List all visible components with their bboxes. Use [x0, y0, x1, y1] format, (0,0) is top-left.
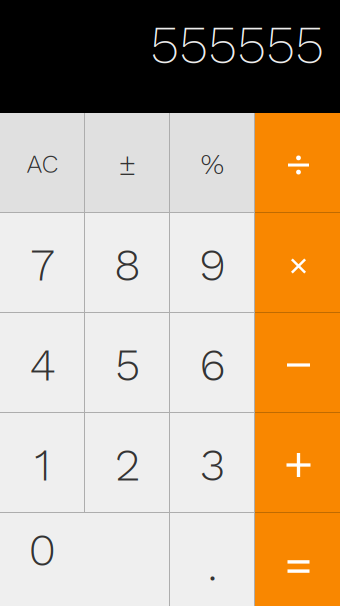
button[interactable]: Add [255, 413, 340, 513]
button[interactable]: 0 [0, 513, 170, 606]
staticText: 4 [29, 338, 55, 392]
staticText: 0 [28, 523, 56, 577]
button[interactable]: 5 [85, 313, 170, 413]
staticText: % [200, 147, 224, 181]
button[interactable]: Multiply [255, 213, 340, 313]
staticText: 6 [199, 338, 225, 392]
button[interactable]: Divide [255, 113, 340, 213]
staticText: 1 [34, 438, 50, 492]
staticText: 555555 [150, 13, 324, 76]
staticText: 9 [199, 238, 226, 292]
staticText: ± [118, 148, 136, 182]
staticText: 7 [30, 238, 54, 292]
staticText: 5 [115, 338, 140, 392]
staticText: 3 [200, 438, 225, 492]
button[interactable]: Subtract [255, 313, 340, 413]
staticText: 2 [115, 438, 140, 492]
staticText: 8 [114, 238, 141, 292]
staticText: AC [26, 149, 58, 179]
button[interactable]: 8 [85, 213, 170, 313]
button[interactable]: 1 [0, 413, 85, 513]
button[interactable]: 2 [85, 413, 170, 513]
button[interactable]: 7 [0, 213, 85, 313]
button[interactable]: % [170, 113, 255, 213]
button[interactable]: 9 [170, 213, 255, 313]
button[interactable]: Equals [255, 513, 340, 606]
button[interactable]: 4 [0, 313, 85, 413]
button[interactable]: ± [85, 113, 170, 213]
button[interactable]: . [170, 513, 255, 606]
button[interactable]: 6 [170, 313, 255, 413]
button[interactable]: 3 [170, 413, 255, 513]
button[interactable]: AC [0, 113, 85, 213]
staticText: . [207, 538, 217, 592]
